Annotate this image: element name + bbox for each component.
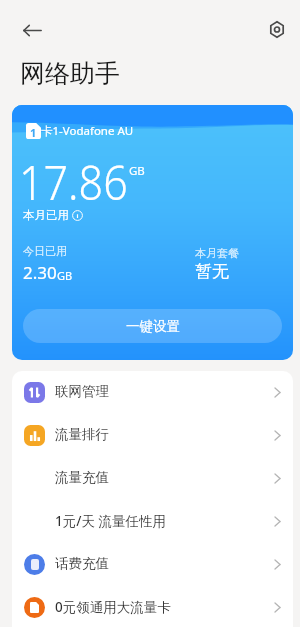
button[interactable]: 0元领通用大流量卡: [12, 586, 293, 627]
staticText: 0元领通用大流量卡: [55, 598, 171, 616]
button[interactable]: 话费充值: [12, 543, 293, 586]
staticText: 2.30: [23, 261, 57, 284]
staticText: GB: [57, 268, 73, 283]
staticText: 1元/天 流量任性用: [55, 512, 166, 530]
staticText: 暂无: [195, 261, 229, 282]
staticText: 1: [30, 125, 37, 140]
button[interactable]: 1元/天 流量任性用: [12, 500, 293, 543]
staticText: 今日已用: [23, 244, 67, 258]
staticText: 网络助手: [20, 58, 120, 89]
staticText: GB: [129, 163, 145, 179]
staticText: 17.86: [19, 149, 128, 214]
staticText: 话费充值: [55, 555, 109, 572]
button[interactable]: 流量充值: [12, 457, 293, 500]
staticText: 本月套餐: [195, 246, 239, 260]
staticText: 联网管理: [55, 383, 109, 400]
button[interactable]: 一键设置: [23, 309, 282, 343]
button[interactable]: 联网管理: [12, 371, 293, 414]
staticText: 一键设置: [126, 318, 180, 335]
button[interactable]: Settings: [264, 16, 290, 42]
staticText: 流量充值: [55, 469, 109, 486]
button[interactable]: Back: [19, 17, 45, 43]
staticText: 流量排行: [55, 426, 109, 443]
button[interactable]: 流量排行: [12, 414, 293, 457]
staticText: 本月已用: [23, 208, 69, 222]
staticText: 卡1-Vodafone AU: [41, 123, 134, 139]
